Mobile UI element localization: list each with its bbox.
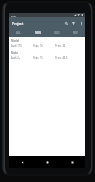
staticText: Make [11,51,19,55]
staticText: Model [11,39,20,43]
button[interactable]: OLD [47,29,66,37]
staticText: Year: 16 [33,44,43,48]
staticText: ALL [16,31,21,35]
staticText: Year: 15 [33,56,43,60]
button[interactable]: Search [64,21,68,25]
staticText: NEW [35,31,41,35]
button[interactable]: NEW [28,29,47,37]
button[interactable]: ALL [9,29,28,37]
staticText: Price: 20 [55,44,66,48]
staticText: 9:30 [11,14,16,17]
staticText: Price: 40.5 [55,56,68,60]
staticText: OLD [54,31,60,35]
button[interactable]: Model [11,39,85,48]
button[interactable]: Home [35,156,60,168]
button[interactable]: Make [11,51,85,60]
staticText: Audi 2+ [11,56,21,60]
staticText: FAV [73,31,78,35]
button[interactable]: More options [79,21,83,25]
staticText: Project [12,21,24,26]
button[interactable]: FAV [66,29,85,37]
button[interactable]: Filter [71,21,75,25]
button[interactable]: Back [9,156,35,168]
staticText: Audi 170 [11,44,22,48]
button[interactable]: Recents [60,156,85,168]
